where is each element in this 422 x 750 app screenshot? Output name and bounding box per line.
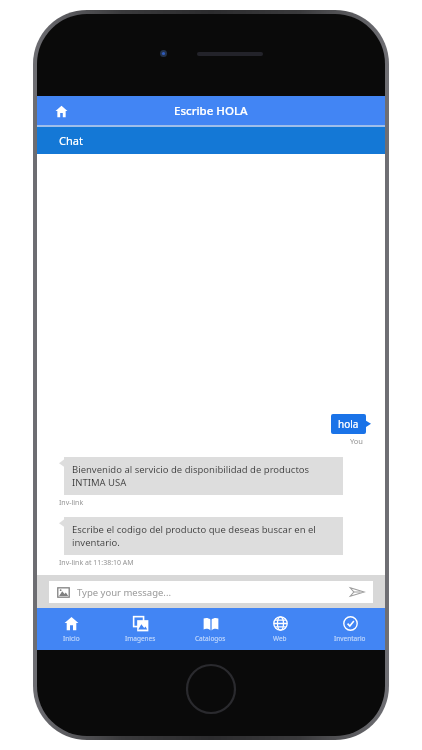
button[interactable]: Imagenes (106, 608, 175, 650)
staticText: Inv-link at 11:38:10 AM (59, 558, 134, 568)
staticText: Imagenes (125, 634, 156, 643)
staticText: Chat (59, 133, 83, 148)
button[interactable]: Escribe el codigo del producto que desea… (64, 517, 343, 555)
button[interactable]: Attach image (56, 585, 70, 599)
button[interactable]: Inicio (37, 608, 106, 650)
button[interactable]: Inventario (315, 608, 385, 650)
staticText: Inventario (334, 634, 366, 643)
button[interactable]: hola (331, 414, 366, 434)
button[interactable]: Send (347, 582, 367, 602)
staticText: Bienvenido al servicio de disponibilidad… (72, 463, 335, 489)
staticText: Inicio (63, 634, 80, 643)
staticText: Escribe HOLA (174, 103, 248, 119)
button[interactable]: Catalogos (175, 608, 245, 650)
staticText: Escribe el codigo del producto que desea… (72, 523, 335, 549)
staticText: Type your message... (77, 586, 171, 599)
staticText: Catalogos (195, 634, 226, 643)
button[interactable]: Chat (37, 127, 385, 154)
button[interactable]: Web (245, 608, 315, 650)
button[interactable]: Home (49, 99, 73, 123)
button[interactable]: Bienvenido al servicio de disponibilidad… (64, 457, 343, 495)
staticText: Web (273, 634, 287, 643)
button[interactable]: Attach image (49, 581, 373, 603)
staticText: You (37, 436, 363, 446)
staticText: hola (338, 417, 359, 431)
staticText: Inv-link (59, 498, 84, 508)
